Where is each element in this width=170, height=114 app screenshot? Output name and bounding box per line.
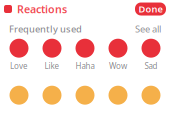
staticText: See all — [135, 23, 161, 35]
button[interactable] — [2, 86, 35, 114]
staticText: Frequently used — [9, 23, 82, 35]
staticText: Sad — [144, 61, 157, 71]
staticText: Love — [10, 61, 28, 71]
button[interactable]: Wow — [101, 39, 134, 71]
staticText: Haha — [75, 61, 94, 71]
button[interactable]: Like — [35, 39, 68, 71]
button[interactable]: Sad — [134, 39, 167, 71]
staticText: Reactions — [17, 2, 67, 16]
button[interactable] — [35, 86, 68, 114]
button[interactable]: Haha — [68, 39, 101, 71]
button[interactable]: Love — [2, 39, 35, 71]
button[interactable]: App — [4, 5, 12, 13]
button[interactable] — [68, 86, 101, 114]
staticText: Like — [44, 61, 59, 71]
staticText: Done — [138, 3, 162, 15]
button[interactable] — [101, 86, 134, 114]
button[interactable] — [134, 86, 167, 114]
staticText: Wow — [109, 61, 127, 71]
button[interactable]: Done — [135, 2, 166, 15]
